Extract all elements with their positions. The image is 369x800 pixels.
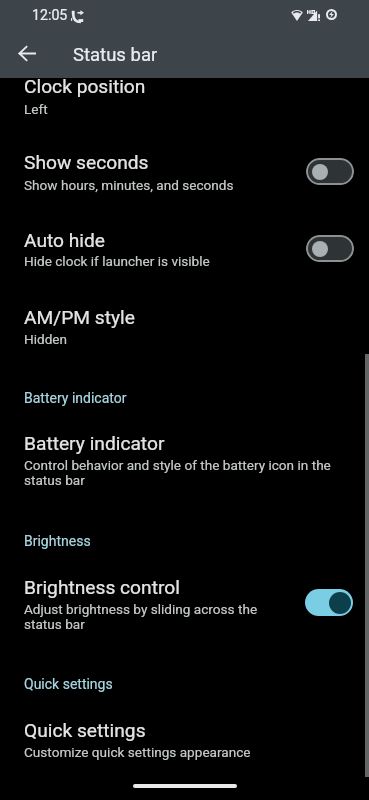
staticText: Hide clock if launcher is visible (24, 253, 300, 269)
staticText: Auto hide (24, 229, 106, 252)
other: Wi-Fi (291, 9, 303, 21)
button[interactable]: Quick settings (0, 706, 369, 768)
other: Call forwarding (71, 10, 84, 23)
staticText: Left (24, 101, 324, 117)
staticText: Status bar (73, 44, 158, 66)
button[interactable]: Auto hide (0, 217, 369, 277)
button[interactable]: Toggle on (305, 589, 353, 616)
button[interactable]: Battery indicator (0, 420, 369, 496)
button[interactable]: Clock position (0, 70, 369, 117)
staticText: Clock position (24, 75, 146, 98)
button[interactable]: Toggle off (306, 235, 354, 262)
staticText: Hidden (24, 331, 300, 347)
staticText: Battery indicator (24, 432, 165, 455)
button[interactable]: Brightness control (0, 563, 369, 639)
button[interactable]: Show seconds (0, 140, 369, 200)
button[interactable]: Toggle off (306, 158, 354, 185)
staticText: Customize quick settings appearance (24, 744, 324, 760)
staticText: Show hours, minutes, and seconds (24, 177, 300, 193)
staticText: Quick settings (24, 719, 146, 742)
staticText: Control behavior and style of the batter… (24, 457, 346, 489)
staticText: AM/PM style (24, 306, 135, 329)
staticText: Brightness (24, 533, 91, 549)
staticText: Quick settings (24, 676, 113, 692)
button[interactable]: Navigate up (10, 36, 44, 70)
staticText: Show seconds (24, 151, 149, 174)
staticText: Adjust brightness by sliding across the … (24, 601, 276, 633)
staticText: 12:05 (32, 7, 68, 24)
other: Charging (326, 9, 337, 20)
staticText: Battery indicator (24, 390, 127, 406)
staticText: Brightness control (24, 576, 180, 599)
other: Mobile signal (308, 10, 320, 21)
button[interactable]: AM/PM style (0, 294, 369, 354)
